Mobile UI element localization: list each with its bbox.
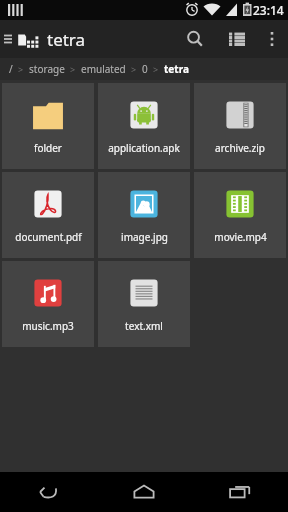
button[interactable]: Open navigation drawer: [0, 22, 42, 56]
button[interactable]: storage: [28, 62, 66, 76]
button[interactable]: emulated: [80, 62, 127, 76]
staticText: archive.zip: [215, 141, 265, 155]
staticText: music.mp3: [22, 319, 74, 333]
button[interactable]: Back: [0, 472, 96, 512]
button[interactable]: Recent apps: [192, 472, 288, 512]
button[interactable]: archive.zip: [194, 83, 286, 169]
staticText: >: [70, 63, 76, 75]
staticText: application.apk: [108, 141, 180, 155]
button[interactable]: More options: [258, 20, 286, 58]
button[interactable]: 0: [141, 62, 149, 76]
button[interactable]: music.mp3: [2, 261, 94, 347]
staticText: /: [9, 62, 13, 76]
button[interactable]: text.xml: [98, 261, 190, 347]
staticText: >: [131, 63, 137, 75]
button[interactable]: folder: [2, 83, 94, 169]
staticText: emulated: [81, 62, 126, 76]
button[interactable]: Search: [174, 20, 216, 58]
staticText: 23:14: [253, 2, 284, 18]
button[interactable]: tetra: [163, 62, 190, 76]
button[interactable]: image.jpg: [98, 172, 190, 258]
staticText: 0: [142, 62, 148, 76]
staticText: >: [153, 63, 159, 75]
staticText: image.jpg: [121, 230, 168, 244]
button[interactable]: document.pdf: [2, 172, 94, 258]
staticText: folder: [34, 141, 62, 155]
button[interactable]: /: [8, 62, 14, 76]
staticText: movie.mp4: [214, 230, 267, 244]
button[interactable]: movie.mp4: [194, 172, 286, 258]
staticText: text.xml: [125, 319, 163, 333]
button[interactable]: List view: [216, 20, 258, 58]
staticText: >: [18, 63, 24, 75]
staticText: storage: [29, 62, 65, 76]
staticText: document.pdf: [15, 230, 82, 244]
staticText: tetra: [164, 62, 189, 76]
button[interactable]: Home: [96, 472, 192, 512]
button[interactable]: application.apk: [98, 83, 190, 169]
staticText: tetra: [47, 28, 86, 51]
